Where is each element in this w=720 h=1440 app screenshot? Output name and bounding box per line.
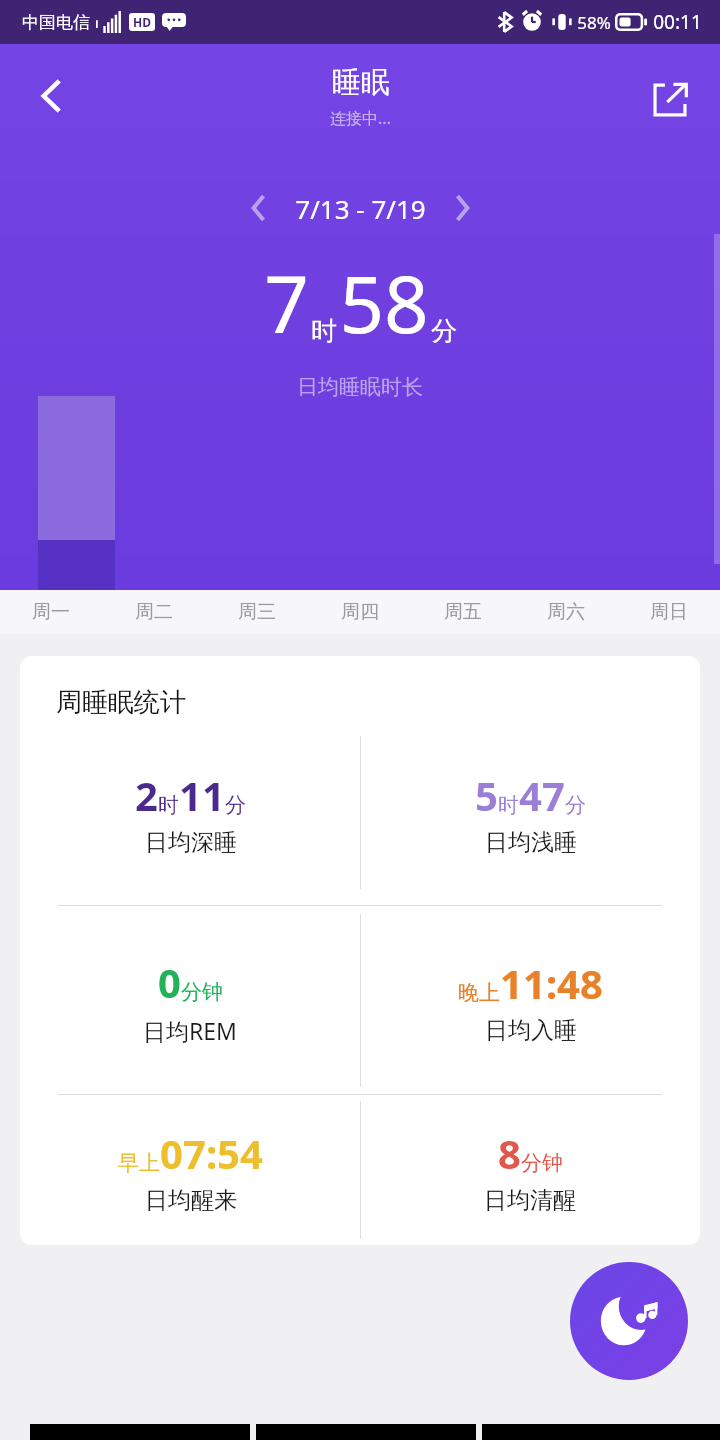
button[interactable]: 周四 [308, 590, 411, 634]
staticText: 0 [158, 955, 181, 1009]
staticText: 时 [498, 792, 519, 818]
button[interactable]: 周五 [411, 590, 514, 634]
button[interactable]: 周二 [102, 590, 205, 634]
staticText: 周五 [444, 600, 482, 624]
button[interactable]: 0 [20, 906, 360, 1094]
staticText: 中国电信 [22, 12, 90, 33]
staticText: 2 [135, 768, 158, 822]
staticText: 日均清醒 [484, 1186, 576, 1215]
staticText: 日均浅睡 [485, 828, 577, 857]
staticText: 日均睡眠时长 [297, 374, 423, 400]
button[interactable]: 5 [360, 719, 700, 905]
staticText: 睡眠 [332, 64, 390, 101]
staticText: 晚上 [458, 980, 500, 1006]
button[interactable]: Previous week [231, 180, 287, 236]
button[interactable]: Sleep music [570, 1262, 688, 1380]
button[interactable]: 周六 [514, 590, 617, 634]
staticText: 分 [565, 792, 586, 818]
staticText: 58% [577, 11, 611, 34]
button[interactable]: 晚上 [360, 906, 700, 1094]
staticText: 日均REM [143, 1015, 237, 1046]
button[interactable]: 2 [20, 719, 360, 905]
button[interactable]: 周日 [617, 590, 720, 634]
button[interactable]: Next week [434, 180, 490, 236]
button[interactable]: 周一 [0, 590, 102, 634]
button[interactable]: 早上 [20, 1095, 360, 1245]
staticText: 周日 [650, 600, 688, 624]
staticText: HD [133, 14, 151, 30]
staticText: 00:11 [653, 9, 702, 35]
staticText: 时 [311, 315, 337, 348]
button[interactable]: 8 [360, 1095, 700, 1245]
staticText: 07:54 [160, 1126, 263, 1180]
staticText: 7/13 - 7/19 [295, 191, 426, 226]
staticText: 日均入睡 [485, 1016, 577, 1045]
button[interactable]: Back [22, 66, 82, 126]
button[interactable]: 周三 [205, 590, 308, 634]
staticText: 7 [264, 250, 309, 356]
staticText: 连接中... [330, 107, 391, 129]
button[interactable]: Share [642, 72, 698, 128]
staticText: 周四 [341, 600, 379, 624]
staticText: 周睡眠统计 [56, 686, 186, 719]
staticText: 分 [431, 315, 457, 348]
staticText: 日均醒来 [145, 1186, 237, 1215]
staticText: 分 [225, 792, 246, 818]
staticText: 日均深睡 [145, 828, 237, 857]
staticText: 周二 [135, 600, 173, 624]
staticText: 8 [498, 1126, 521, 1180]
staticText: 5 [475, 768, 498, 822]
staticText: 11:48 [500, 956, 603, 1010]
staticText: 时 [158, 792, 179, 818]
staticText: 58 [339, 250, 429, 356]
staticText: 11 [179, 768, 225, 822]
staticText: 周六 [547, 600, 585, 624]
staticText: 分钟 [181, 979, 223, 1005]
staticText: 分钟 [521, 1150, 563, 1176]
staticText: 47 [519, 768, 565, 822]
staticText: 周一 [32, 600, 70, 624]
staticText: 周三 [238, 600, 276, 624]
staticText: 早上 [118, 1150, 160, 1176]
